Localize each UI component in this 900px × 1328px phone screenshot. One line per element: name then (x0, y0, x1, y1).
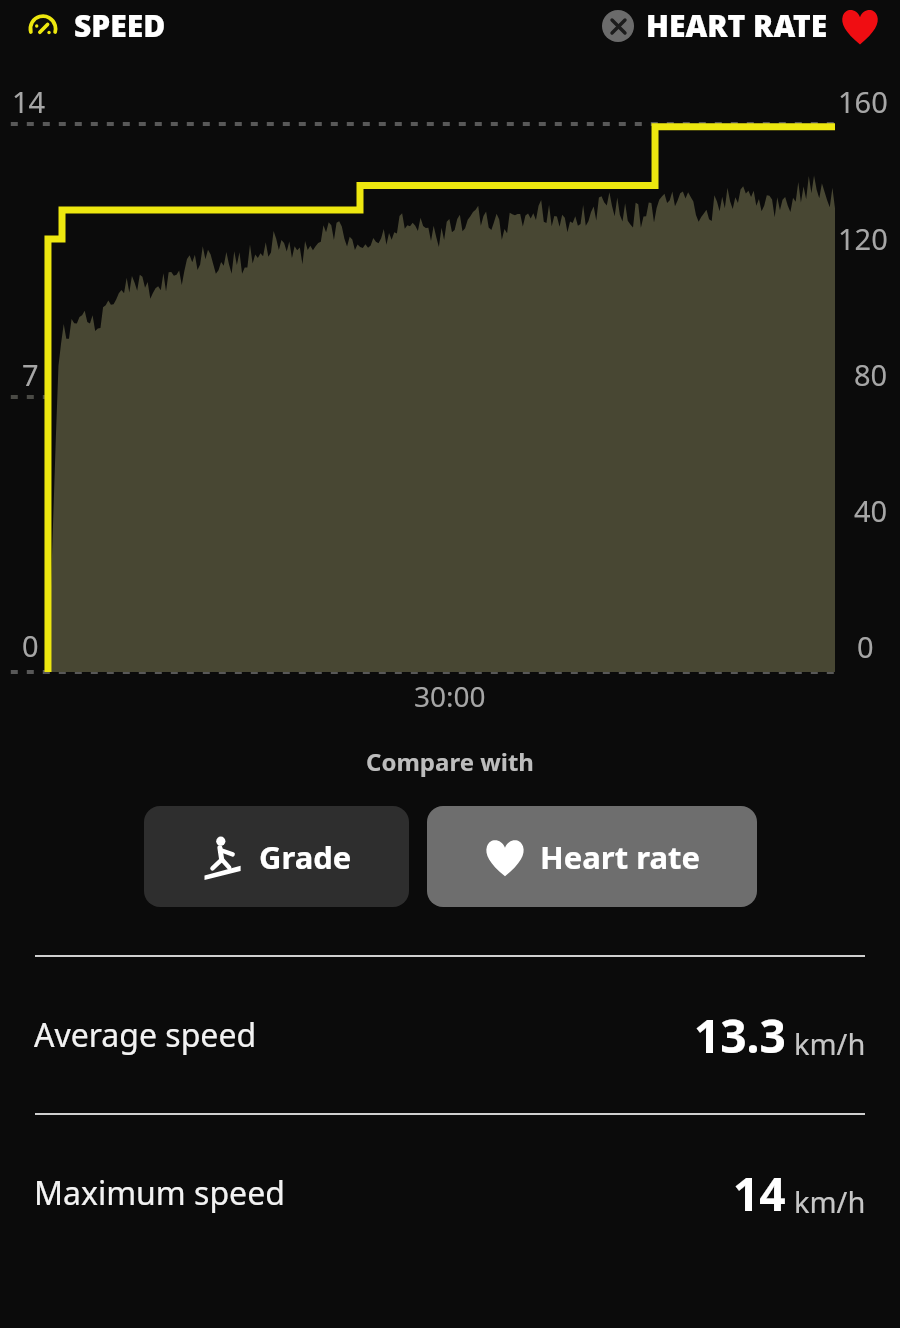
button[interactable]: Maximum speed (0, 1115, 900, 1271)
staticText: 0 (22, 626, 39, 665)
button[interactable]: Remove heart rate (602, 10, 634, 42)
staticText: Grade (259, 836, 352, 878)
staticText: 14 (12, 82, 46, 121)
button[interactable]: Speed (26, 5, 166, 46)
button[interactable]: Grade (144, 806, 409, 907)
button[interactable]: Average speed (0, 957, 900, 1113)
staticText: km/h (794, 1024, 866, 1063)
staticText: 13.3 (694, 1004, 786, 1067)
staticText: 0 (857, 627, 874, 666)
staticText: 80 (854, 355, 888, 394)
staticText: Compare with (0, 745, 900, 778)
staticText: Heart rate (540, 836, 700, 878)
other: Speed (26, 9, 60, 43)
staticText: 120 (838, 219, 888, 258)
staticText: 7 (22, 355, 39, 394)
staticText: 30:00 (414, 677, 486, 715)
staticText: 160 (838, 82, 888, 121)
staticText: Average speed (34, 1013, 257, 1057)
staticText: km/h (794, 1182, 866, 1221)
staticText: Maximum speed (34, 1171, 285, 1215)
staticText: HEART RATE (646, 5, 828, 46)
staticText: SPEED (74, 5, 166, 46)
staticText: 40 (854, 491, 888, 530)
other: Heart rate (840, 6, 880, 46)
staticText: 14 (733, 1162, 786, 1225)
button[interactable]: Heart rate (427, 806, 757, 907)
